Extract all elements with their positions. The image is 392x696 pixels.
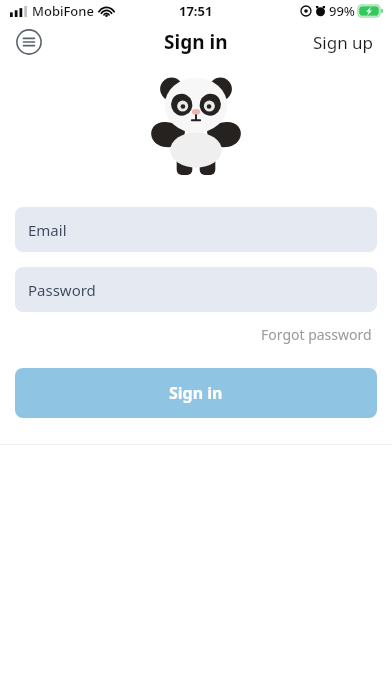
staticText: 99% bbox=[329, 2, 355, 20]
staticText: Email bbox=[28, 220, 67, 240]
staticText: Sign in bbox=[164, 29, 228, 55]
button[interactable]: Sign up bbox=[295, 23, 392, 62]
staticText: 17:51 bbox=[179, 2, 213, 20]
button[interactable]: Menu bbox=[16, 29, 42, 55]
button[interactable]: Email bbox=[15, 207, 377, 252]
staticText: Forgot password bbox=[261, 325, 372, 344]
staticText: Sign up bbox=[313, 31, 374, 54]
staticText: MobiFone bbox=[32, 2, 94, 20]
button[interactable]: Forgot password bbox=[241, 319, 392, 350]
staticText: Sign in bbox=[169, 382, 223, 404]
staticText: Password bbox=[28, 280, 96, 300]
button[interactable]: Sign in bbox=[15, 368, 377, 418]
button[interactable]: Password bbox=[15, 267, 377, 312]
